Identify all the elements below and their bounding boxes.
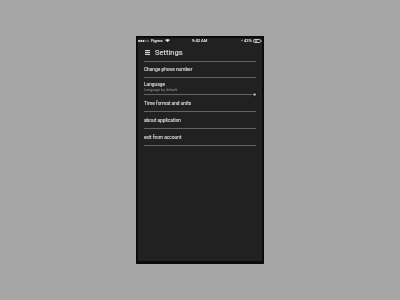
staticText: Settings bbox=[155, 48, 183, 57]
button[interactable]: Time format and units bbox=[138, 94, 262, 111]
staticText: 42% bbox=[244, 38, 252, 43]
staticText: about application bbox=[144, 118, 182, 124]
button[interactable]: Open navigation menu bbox=[143, 48, 152, 57]
button[interactable]: about application bbox=[138, 111, 262, 128]
staticText: Time format and units bbox=[144, 101, 192, 107]
staticText: exit from account bbox=[144, 135, 182, 141]
staticText: Language by default bbox=[144, 88, 178, 92]
button[interactable]: exit from account bbox=[138, 128, 262, 145]
staticText: 9:42 AM bbox=[192, 38, 208, 43]
staticText: Change phone number bbox=[144, 67, 193, 73]
button[interactable]: Language bbox=[138, 77, 262, 94]
button[interactable]: Change phone number bbox=[138, 61, 262, 77]
staticText: Language bbox=[144, 82, 166, 88]
staticText: Figma bbox=[151, 38, 163, 43]
